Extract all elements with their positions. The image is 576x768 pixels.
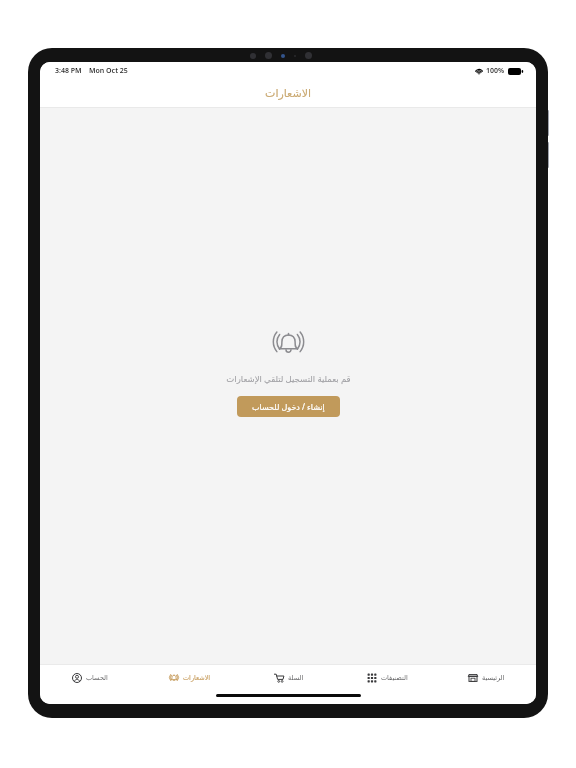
button[interactable]: إنشاء / دخول للحساب (237, 396, 340, 417)
staticText: Mon Oct 25 (89, 66, 128, 76)
button[interactable]: التصنيفات (338, 665, 437, 691)
staticText: 100% (486, 66, 505, 76)
button[interactable]: السلة (239, 665, 338, 691)
staticText: 3:48 PM (55, 66, 82, 76)
staticText: الاشعارات (265, 87, 311, 100)
button[interactable]: الاشعارات (140, 665, 239, 691)
staticText: التصنيفات (381, 674, 408, 682)
staticText: الحساب (86, 674, 108, 682)
staticText: الاشعارات (183, 674, 211, 682)
button[interactable]: الحساب (40, 665, 140, 691)
staticText: إنشاء / دخول للحساب (252, 401, 325, 412)
staticText: الرئيسية (482, 674, 505, 682)
staticText: السلة (288, 674, 304, 682)
button[interactable]: الرئيسية (437, 665, 536, 691)
staticText: قم بعملية التسجيل لتلقي الإشعارات (226, 373, 351, 385)
